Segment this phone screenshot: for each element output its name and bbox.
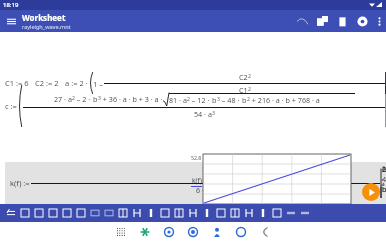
button[interactable]: Phone xyxy=(257,224,273,240)
staticText: 2 xyxy=(247,95,250,102)
button[interactable]: Matrix 4 xyxy=(74,204,88,222)
button[interactable]: Matrix 2 xyxy=(46,204,60,222)
staticText: – 48 · xyxy=(220,95,242,105)
button[interactable]: Contacts xyxy=(209,224,225,240)
staticText: 6 · C2 xyxy=(196,185,215,195)
staticText: 3 xyxy=(212,109,215,116)
button[interactable]: Settings xyxy=(161,224,177,240)
button[interactable]: Undo xyxy=(292,11,312,31)
button[interactable]: Extra 1 xyxy=(298,204,312,222)
button[interactable]: Symbol 3 xyxy=(158,204,172,222)
staticText: rayleigh_wave.mnt xyxy=(22,23,71,30)
staticText: 2 xyxy=(72,94,75,101)
staticText: C2 := 2 xyxy=(35,78,59,88)
staticText: 2 xyxy=(248,72,251,79)
button[interactable]: Run xyxy=(362,183,380,201)
button[interactable]: k(f) := xyxy=(5,162,386,204)
staticText: C2 xyxy=(239,72,248,82)
button[interactable]: Extra 0 xyxy=(284,204,298,222)
button[interactable]: Dim 1 xyxy=(102,204,116,222)
button[interactable]: Symbol 5 xyxy=(186,204,200,222)
staticText: 18:19 xyxy=(3,1,19,9)
button[interactable]: Symbol 6 xyxy=(200,204,214,222)
button[interactable]: Matrix 1 xyxy=(32,204,46,222)
button[interactable]: Symbol 0 xyxy=(116,204,130,222)
staticText: + 36 · a · b + 3 · a · xyxy=(101,94,163,104)
staticText: 54 · a xyxy=(194,109,212,119)
staticText: k(f) := xyxy=(10,178,30,188)
button[interactable]: Symbol 7 xyxy=(214,204,228,222)
staticText: b xyxy=(242,95,247,105)
staticText: b xyxy=(212,95,217,105)
button[interactable]: Symbol 4 xyxy=(172,204,186,222)
button[interactable]: Symbol 9 xyxy=(242,204,256,222)
button[interactable]: Symbol 11 xyxy=(270,204,284,222)
staticText: 2 xyxy=(248,85,251,92)
button[interactable]: Keyboard xyxy=(4,204,18,222)
button[interactable]: Symbol 10 xyxy=(256,204,270,222)
button[interactable]: Camera xyxy=(185,224,201,240)
staticText: 2 xyxy=(187,95,190,102)
staticText: – 12 · xyxy=(190,95,212,105)
staticText: 81 · a xyxy=(169,95,187,105)
button[interactable]: Menu xyxy=(0,10,22,32)
button[interactable]: Matrix 0 xyxy=(18,204,32,222)
staticText: Worksheet xyxy=(22,12,66,23)
staticText: f xyxy=(204,172,207,182)
button[interactable]: Files xyxy=(233,224,249,240)
staticText: 1 – xyxy=(93,79,103,89)
staticText: 3 xyxy=(98,94,101,101)
button[interactable]: Symbol 2 xyxy=(144,204,158,222)
staticText: + 216 · a · b + 768 · a xyxy=(250,95,320,105)
staticText: 3 xyxy=(217,95,220,102)
staticText: – 2 · xyxy=(75,94,93,104)
staticText: b xyxy=(93,94,98,104)
button[interactable]: Symbol 1 xyxy=(130,204,144,222)
button[interactable]: Dim 0 xyxy=(88,204,102,222)
staticText: a := 2 · xyxy=(65,78,88,88)
button[interactable]: Symbol 8 xyxy=(228,204,242,222)
button[interactable]: Calculator xyxy=(137,224,153,240)
button[interactable]: Copy xyxy=(312,11,332,31)
button[interactable]: More options xyxy=(372,10,386,32)
staticText: c := xyxy=(5,101,17,111)
button[interactable]: Apps xyxy=(113,224,129,240)
staticText: 52.8 xyxy=(191,154,202,161)
staticText: C1 := 6 xyxy=(5,78,29,88)
staticText: 27 · a xyxy=(54,94,72,104)
staticText: k(f) xyxy=(192,176,202,185)
button[interactable]: Delete xyxy=(332,11,352,31)
button[interactable]: Settings xyxy=(352,11,372,31)
button[interactable]: Matrix 3 xyxy=(60,204,74,222)
staticText: C1 xyxy=(239,85,248,95)
